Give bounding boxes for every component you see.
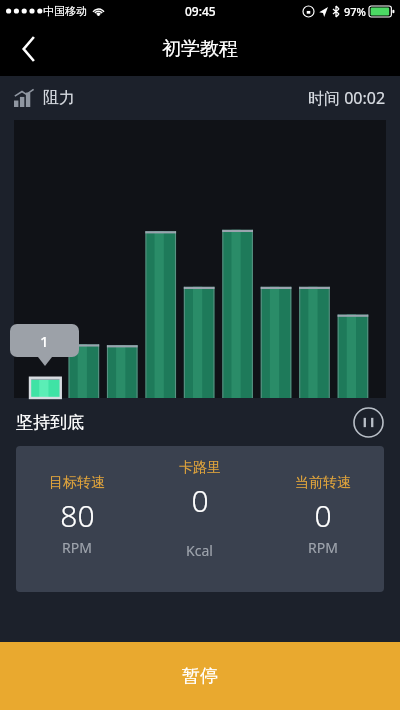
staticText: 97% [344,4,366,19]
staticText: 80 [60,495,95,536]
staticText: 卡路里 [179,459,221,477]
button[interactable]: Pause [353,407,384,438]
staticText: RPM [308,538,338,557]
button[interactable]: Back [6,26,52,72]
staticText: 初学教程 [162,37,238,61]
staticText: 当前转速 [295,474,351,492]
staticText: 时间 00:02 [308,87,386,109]
staticText: 1 [40,331,49,351]
staticText: 中国移动 [43,4,87,18]
button[interactable]: 暂停 [0,642,400,710]
staticText: RPM [62,538,92,557]
staticText: 坚持到底 [16,412,84,433]
staticText: 暂停 [182,665,218,688]
staticText: 目标转速 [49,474,105,492]
staticText: Kcal [186,541,213,560]
staticText: 09:45 [185,3,216,19]
staticText: 阻力 [43,88,75,108]
staticText: 0 [314,495,332,536]
staticText: 0 [191,480,209,521]
